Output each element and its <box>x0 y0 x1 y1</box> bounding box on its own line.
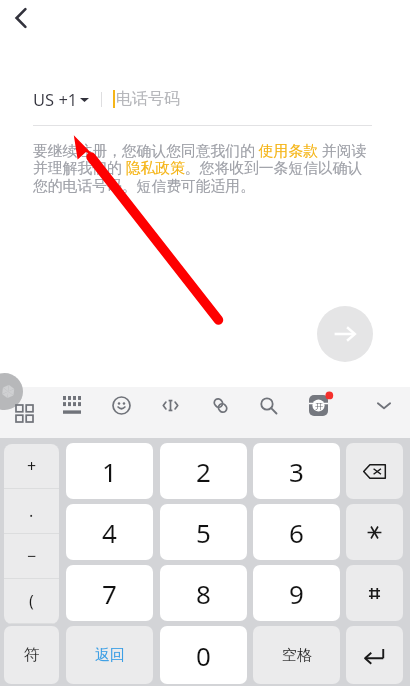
button[interactable]: 8 <box>160 565 247 621</box>
staticText: 9 <box>289 576 304 611</box>
staticText: 电话号码 <box>116 89 180 109</box>
staticText: 4 <box>102 515 117 550</box>
staticText: 空格 <box>282 646 312 665</box>
staticText: 2 <box>196 454 211 489</box>
button[interactable]: 2 <box>160 443 247 499</box>
button[interactable]: 0 <box>160 626 247 684</box>
button[interactable]: 5 <box>160 504 247 560</box>
staticText: ( <box>29 590 34 612</box>
button[interactable]: US +1 <box>33 88 89 110</box>
button[interactable]: Emoji <box>103 387 139 423</box>
button[interactable]: 7 <box>66 565 153 621</box>
button[interactable]: Collapse keyboard <box>366 387 402 423</box>
button[interactable]: 返回 <box>66 626 153 684</box>
staticText: − <box>27 545 37 567</box>
staticText: 开 <box>315 401 323 411</box>
button[interactable]: Text editing <box>152 387 188 423</box>
staticText: 6 <box>289 515 304 550</box>
button[interactable]: Backspace <box>346 443 403 499</box>
button[interactable]: 符 <box>4 626 59 684</box>
staticText: 7 <box>102 576 117 611</box>
button[interactable]: 6 <box>253 504 340 560</box>
button[interactable]: 9 <box>253 565 340 621</box>
button[interactable]: . <box>4 489 59 533</box>
button[interactable]: Assistant <box>0 373 23 410</box>
button[interactable]: Star <box>346 504 403 560</box>
button[interactable]: 3 <box>253 443 340 499</box>
button[interactable]: ( <box>4 579 59 623</box>
staticText: 0 <box>196 638 211 673</box>
button[interactable]: 1 <box>66 443 153 499</box>
staticText: 5 <box>196 515 211 550</box>
button[interactable]: Pound <box>346 565 403 621</box>
button[interactable]: Clipboard <box>202 387 238 423</box>
staticText: 返回 <box>95 646 125 665</box>
button[interactable]: 4 <box>66 504 153 560</box>
staticText: 符 <box>24 645 40 665</box>
staticText: + <box>27 455 37 477</box>
button[interactable]: − <box>4 534 59 578</box>
button[interactable]: Next <box>317 306 373 362</box>
button[interactable]: Enter <box>346 626 403 684</box>
staticText: . <box>29 500 34 522</box>
staticText: 要继续注册，您确认您同意我们的 使用条款 并阅读 并理解我们的 隐私政策。您将收… <box>33 140 367 195</box>
staticText: 8 <box>196 576 211 611</box>
staticText: US +1 <box>33 88 78 110</box>
button[interactable]: 空格 <box>253 626 340 684</box>
staticText: 3 <box>289 454 304 489</box>
button[interactable]: Keyboard <box>54 387 90 423</box>
button[interactable]: Back <box>3 0 39 36</box>
staticText: 1 <box>102 454 117 489</box>
button[interactable]: Search <box>250 387 286 423</box>
button[interactable]: + <box>4 444 59 488</box>
button[interactable]: Apps <box>6 395 42 431</box>
button[interactable]: Input method <box>304 387 338 421</box>
